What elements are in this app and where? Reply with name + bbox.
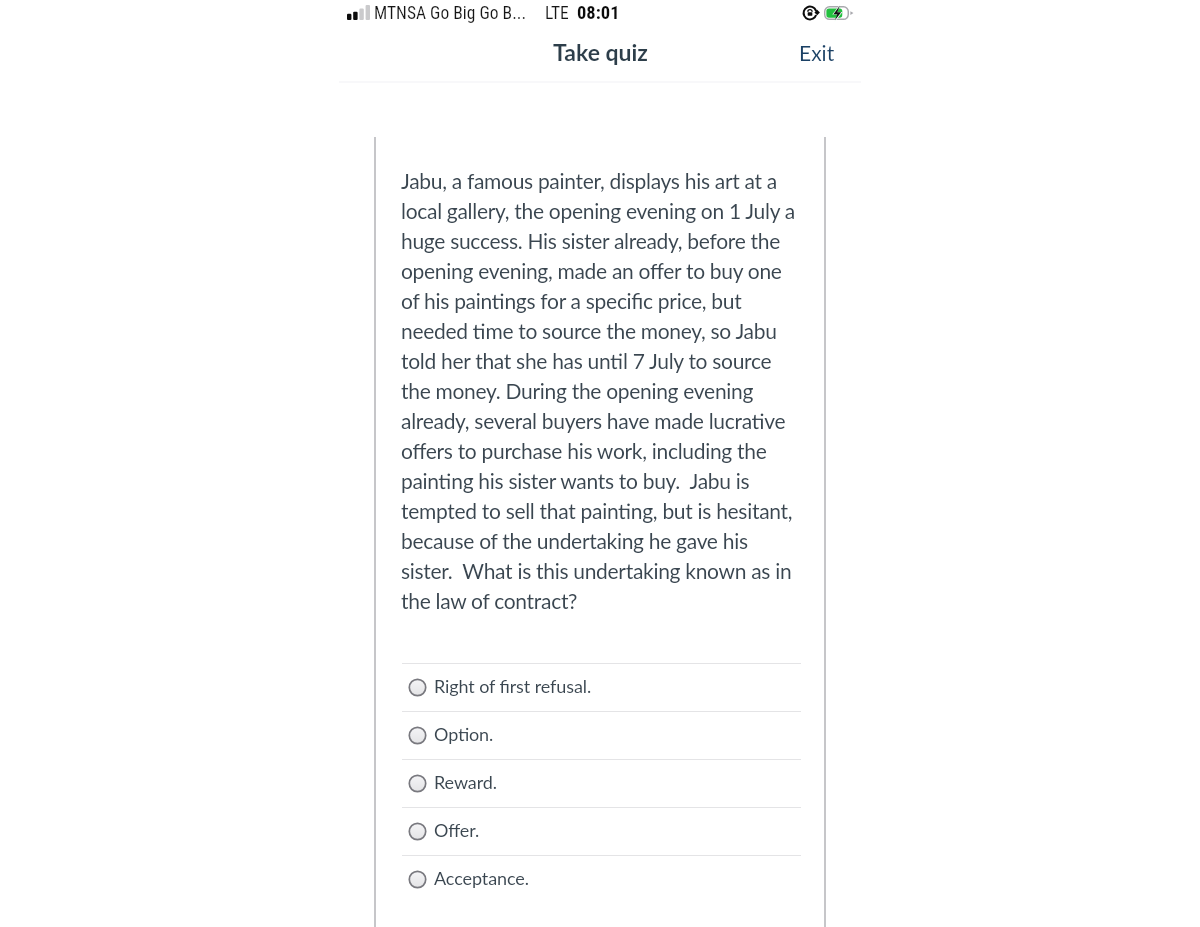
button[interactable]: Offer. bbox=[402, 808, 801, 855]
staticText: Offer. bbox=[434, 819, 480, 841]
other: Mobile signal strength bbox=[347, 5, 370, 20]
other: Battery charging bbox=[824, 5, 854, 21]
staticText: LTE bbox=[545, 3, 569, 24]
staticText: Take quiz bbox=[553, 38, 648, 66]
staticText: Jabu, a famous painter, displays his art… bbox=[401, 168, 800, 613]
staticText: MTNSA Go Big Go B... bbox=[374, 3, 526, 24]
other: Auto-rotate locked bbox=[802, 5, 818, 21]
staticText: Reward. bbox=[434, 771, 497, 793]
staticText: Exit bbox=[799, 40, 835, 65]
button[interactable]: Right of first refusal. bbox=[402, 664, 801, 711]
button[interactable]: Exit bbox=[795, 34, 839, 71]
button[interactable]: Option. bbox=[402, 712, 801, 759]
staticText: Acceptance. bbox=[434, 867, 529, 889]
button[interactable]: Acceptance. bbox=[402, 856, 801, 903]
staticText: Right of first refusal. bbox=[434, 675, 592, 697]
staticText: Option. bbox=[434, 723, 494, 745]
staticText: 08:01 bbox=[577, 2, 620, 24]
button[interactable]: Reward. bbox=[402, 760, 801, 807]
